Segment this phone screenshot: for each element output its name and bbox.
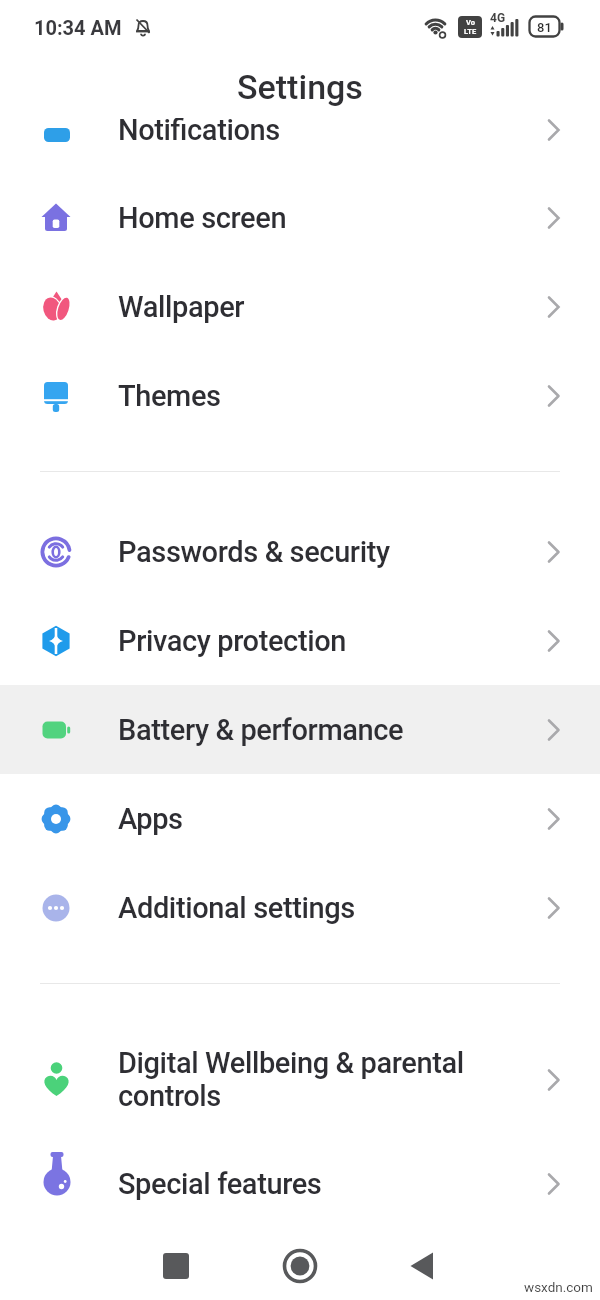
button[interactable]: Notifications bbox=[0, 87, 600, 173]
button[interactable]: Themes bbox=[0, 351, 600, 440]
staticText: Apps bbox=[118, 802, 546, 836]
staticText: Vo bbox=[466, 18, 475, 27]
staticText: 81 bbox=[537, 20, 552, 35]
button[interactable] bbox=[280, 1246, 320, 1286]
staticText: Privacy protection bbox=[118, 624, 546, 658]
staticText: Special features bbox=[118, 1167, 546, 1201]
button[interactable]: Passwords & security bbox=[0, 507, 600, 596]
staticText: LTE bbox=[464, 27, 477, 36]
button[interactable]: Digital Wellbeing & parental controls bbox=[0, 1022, 600, 1137]
staticText: Battery & performance bbox=[118, 713, 546, 747]
staticText: Themes bbox=[118, 379, 546, 413]
staticText: Home screen bbox=[118, 201, 546, 235]
staticText: Passwords & security bbox=[118, 535, 546, 569]
button[interactable]: Apps bbox=[0, 774, 600, 863]
button[interactable]: Special features bbox=[0, 1139, 600, 1228]
button[interactable]: Privacy protection bbox=[0, 596, 600, 685]
button[interactable]: Battery & performance bbox=[0, 685, 600, 774]
staticText: 10:34 AM bbox=[34, 16, 122, 39]
staticText: Notifications bbox=[118, 113, 546, 147]
button[interactable]: Home screen bbox=[0, 173, 600, 262]
staticText: Settings bbox=[237, 67, 363, 107]
staticText: Additional settings bbox=[118, 891, 546, 925]
staticText: wsxdn.com bbox=[524, 1279, 593, 1295]
button[interactable]: Wallpaper bbox=[0, 262, 600, 351]
button[interactable]: Additional settings bbox=[0, 863, 600, 952]
staticText: Wallpaper bbox=[118, 290, 546, 324]
button[interactable] bbox=[160, 1250, 192, 1282]
button[interactable] bbox=[406, 1250, 438, 1282]
staticText: Digital Wellbeing & parental controls bbox=[118, 1046, 546, 1113]
staticText: 4G bbox=[490, 11, 506, 25]
